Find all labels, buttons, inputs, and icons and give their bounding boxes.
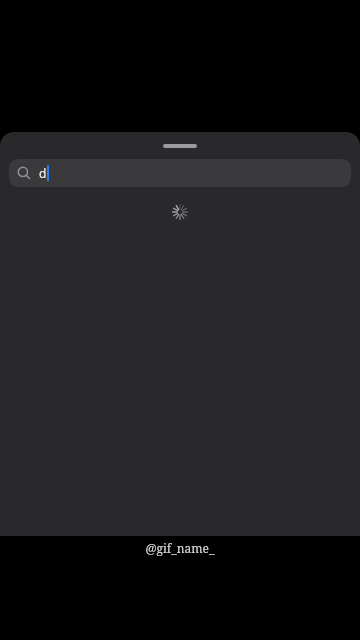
staticText: @gif_name_ xyxy=(145,540,215,556)
button[interactable] xyxy=(163,144,197,148)
button[interactable]: Search xyxy=(9,159,351,187)
staticText: d xyxy=(39,165,47,181)
button[interactable]: @gif_name_ xyxy=(0,536,360,560)
